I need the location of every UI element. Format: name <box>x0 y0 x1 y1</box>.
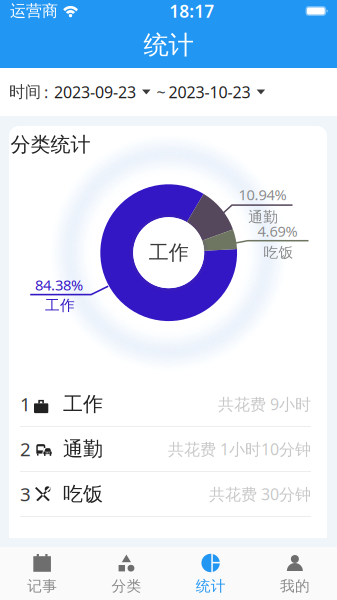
staticText: 通勤 <box>63 437 103 461</box>
staticText: ~ <box>157 81 166 103</box>
staticText: 84.38% <box>35 275 83 295</box>
button[interactable]: 统计 <box>168 547 253 600</box>
button[interactable]: 2 <box>9 427 327 472</box>
staticText: 2023-09-23 <box>54 81 136 103</box>
staticText: 2023-10-23 <box>169 81 251 103</box>
button[interactable]: 分类 <box>84 547 168 600</box>
staticText: 3 <box>20 482 31 506</box>
button[interactable]: 2023-09-23 <box>48 81 151 103</box>
button[interactable]: 2023-10-23 <box>169 81 265 103</box>
staticText: 18:17 <box>169 0 214 22</box>
staticText: 时间 <box>9 82 41 102</box>
button[interactable]: 1 <box>9 382 327 427</box>
staticText: 1 <box>20 392 31 416</box>
staticText: 共花费 30分钟 <box>209 483 311 505</box>
staticText: 通勤 <box>248 208 278 226</box>
staticText: 工作 <box>63 392 103 416</box>
staticText: 吃饭 <box>263 243 293 261</box>
staticText: 工作 <box>149 240 189 265</box>
staticText: 4.69% <box>258 221 298 241</box>
staticText: 统计 <box>196 577 226 595</box>
staticText: 共花费 1小时10分钟 <box>168 438 311 460</box>
staticText: 我的 <box>280 577 310 595</box>
staticText: 分类 <box>111 577 141 595</box>
staticText: : <box>44 81 48 103</box>
staticText: 运营商 <box>10 1 58 21</box>
staticText: 工作 <box>45 296 75 314</box>
button[interactable]: 3 <box>9 472 327 517</box>
button[interactable]: 我的 <box>253 547 337 600</box>
staticText: 吃饭 <box>63 482 103 506</box>
staticText: 统计 <box>143 29 193 60</box>
staticText: 2 <box>20 437 31 461</box>
button[interactable]: 记事 <box>0 547 84 600</box>
staticText: 共花费 9小时 <box>218 393 311 415</box>
staticText: 记事 <box>27 577 57 595</box>
staticText: 分类统计 <box>10 132 90 157</box>
staticText: 10.94% <box>238 185 286 204</box>
